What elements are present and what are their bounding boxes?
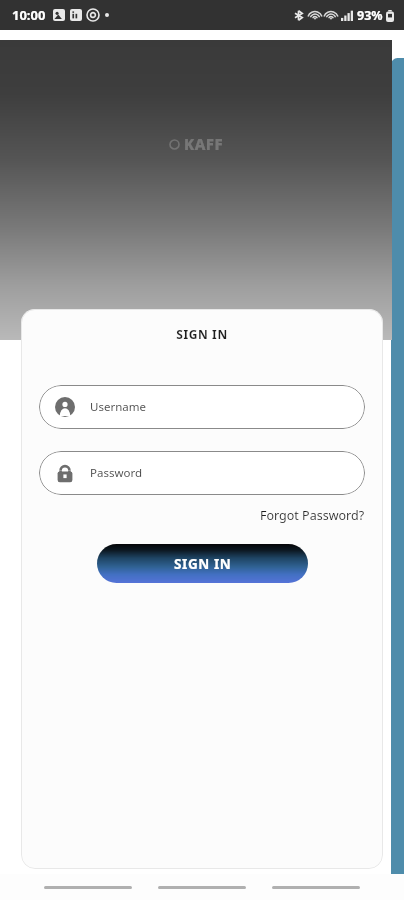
staticText: KAFF xyxy=(184,134,224,154)
button[interactable]: Recents xyxy=(43,879,133,895)
button[interactable]: Password xyxy=(39,451,365,495)
staticText: SIGN IN xyxy=(174,555,232,573)
staticText: Username xyxy=(90,399,146,415)
staticText: SIGN IN xyxy=(21,326,383,342)
button[interactable]: Username xyxy=(39,385,365,429)
button[interactable]: Back xyxy=(271,879,361,895)
staticText: Password xyxy=(90,465,143,481)
button[interactable]: SIGN IN xyxy=(97,544,308,583)
staticText: Forgot Password? xyxy=(260,507,365,524)
staticText: 10:00 xyxy=(12,6,46,24)
button[interactable]: Home xyxy=(157,879,247,895)
staticText: 93% xyxy=(357,7,383,24)
button[interactable]: Forgot Password? xyxy=(242,504,383,527)
